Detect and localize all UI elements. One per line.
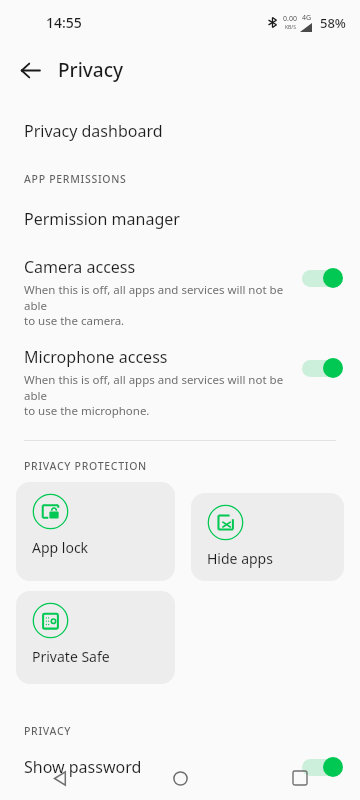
staticText: Private Safe (32, 647, 110, 666)
staticText: Privacy (58, 57, 123, 83)
staticText: Permission manager (24, 208, 180, 230)
staticText: PRIVACY (24, 724, 72, 738)
staticText: 58% (320, 14, 346, 32)
staticText: Camera access (24, 256, 136, 278)
button[interactable]: Show password (0, 749, 360, 785)
button[interactable]: Private Safe (16, 591, 175, 684)
staticText: Show password (24, 756, 302, 778)
button[interactable] (302, 358, 344, 378)
button[interactable]: App lock (16, 482, 175, 581)
button[interactable]: Hide apps (191, 493, 344, 581)
staticText: When this is off, all apps and services … (24, 282, 294, 328)
staticText: PRIVACY PROTECTION (24, 459, 147, 473)
button[interactable] (302, 757, 344, 777)
button[interactable]: Microphone access (0, 328, 360, 418)
button[interactable]: Permission manager (0, 200, 360, 238)
button[interactable]: Home (156, 756, 204, 800)
staticText: App lock (32, 538, 89, 557)
button[interactable] (302, 268, 344, 288)
staticText: Hide apps (207, 549, 273, 568)
staticText: KB/S (285, 24, 296, 31)
staticText: When this is off, all apps and services … (24, 372, 294, 418)
staticText: Microphone access (24, 346, 168, 368)
button[interactable]: Back (10, 50, 50, 90)
staticText: 0.00 (283, 14, 297, 24)
button[interactable]: Back (36, 756, 84, 800)
button[interactable]: Camera access (0, 238, 360, 328)
staticText: 4G (302, 13, 312, 23)
staticText: APP PERMISSIONS (24, 172, 127, 186)
button[interactable]: Privacy dashboard (0, 112, 360, 150)
button[interactable]: Recent apps (276, 756, 324, 800)
staticText: Privacy dashboard (24, 120, 163, 142)
staticText: 14:55 (46, 13, 82, 32)
